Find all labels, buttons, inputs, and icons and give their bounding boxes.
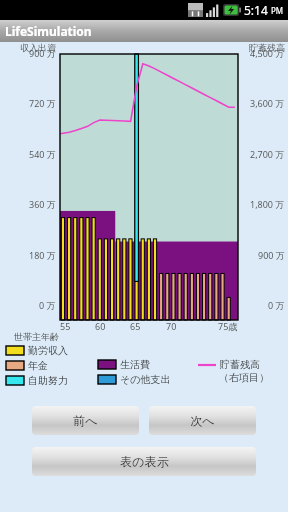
staticText: 自助努力 [28,374,68,387]
staticText: 収入出資 [20,42,56,53]
staticText: 4,500 万 [250,47,285,59]
staticText: 貯蓄残高 [220,358,260,371]
staticText: 世帯主年齢 [14,331,59,342]
staticText: PM [271,5,284,16]
staticText: 5:14 [244,2,268,18]
staticText: 勤労収入 [28,344,68,357]
staticText: 720 万 [29,97,56,109]
staticText: LifeSimulation [5,23,92,39]
staticText: 360 万 [29,198,56,210]
staticText: 900 万 [29,47,56,59]
button[interactable]: 次へ [149,406,256,435]
staticText: 2,700 万 [250,148,285,160]
staticText: 次へ [190,413,215,428]
staticText: 180 万 [29,249,56,261]
staticText: 年金 [28,359,48,372]
staticText: その他支出 [120,373,171,386]
staticText: 540 万 [29,148,56,160]
staticText: 0 万 [39,299,56,311]
button[interactable]: 表の表示 [32,447,256,476]
staticText: （右項目） [219,371,269,384]
staticText: 70 [166,320,177,332]
staticText: 55 [60,320,71,332]
staticText: 貯蓄残高 [249,42,285,53]
staticText: 1,800 万 [250,198,285,210]
staticText: 前へ [73,413,98,428]
staticText: 生活費 [120,358,150,371]
staticText: 3,600 万 [250,97,285,109]
staticText: 65 [130,320,141,332]
staticText: 75歳 [218,320,238,332]
staticText: 表の表示 [120,454,169,469]
staticText: 0 万 [268,299,285,311]
button[interactable]: 前へ [32,406,139,435]
staticText: 60 [95,320,106,332]
staticText: 900 万 [258,249,285,261]
